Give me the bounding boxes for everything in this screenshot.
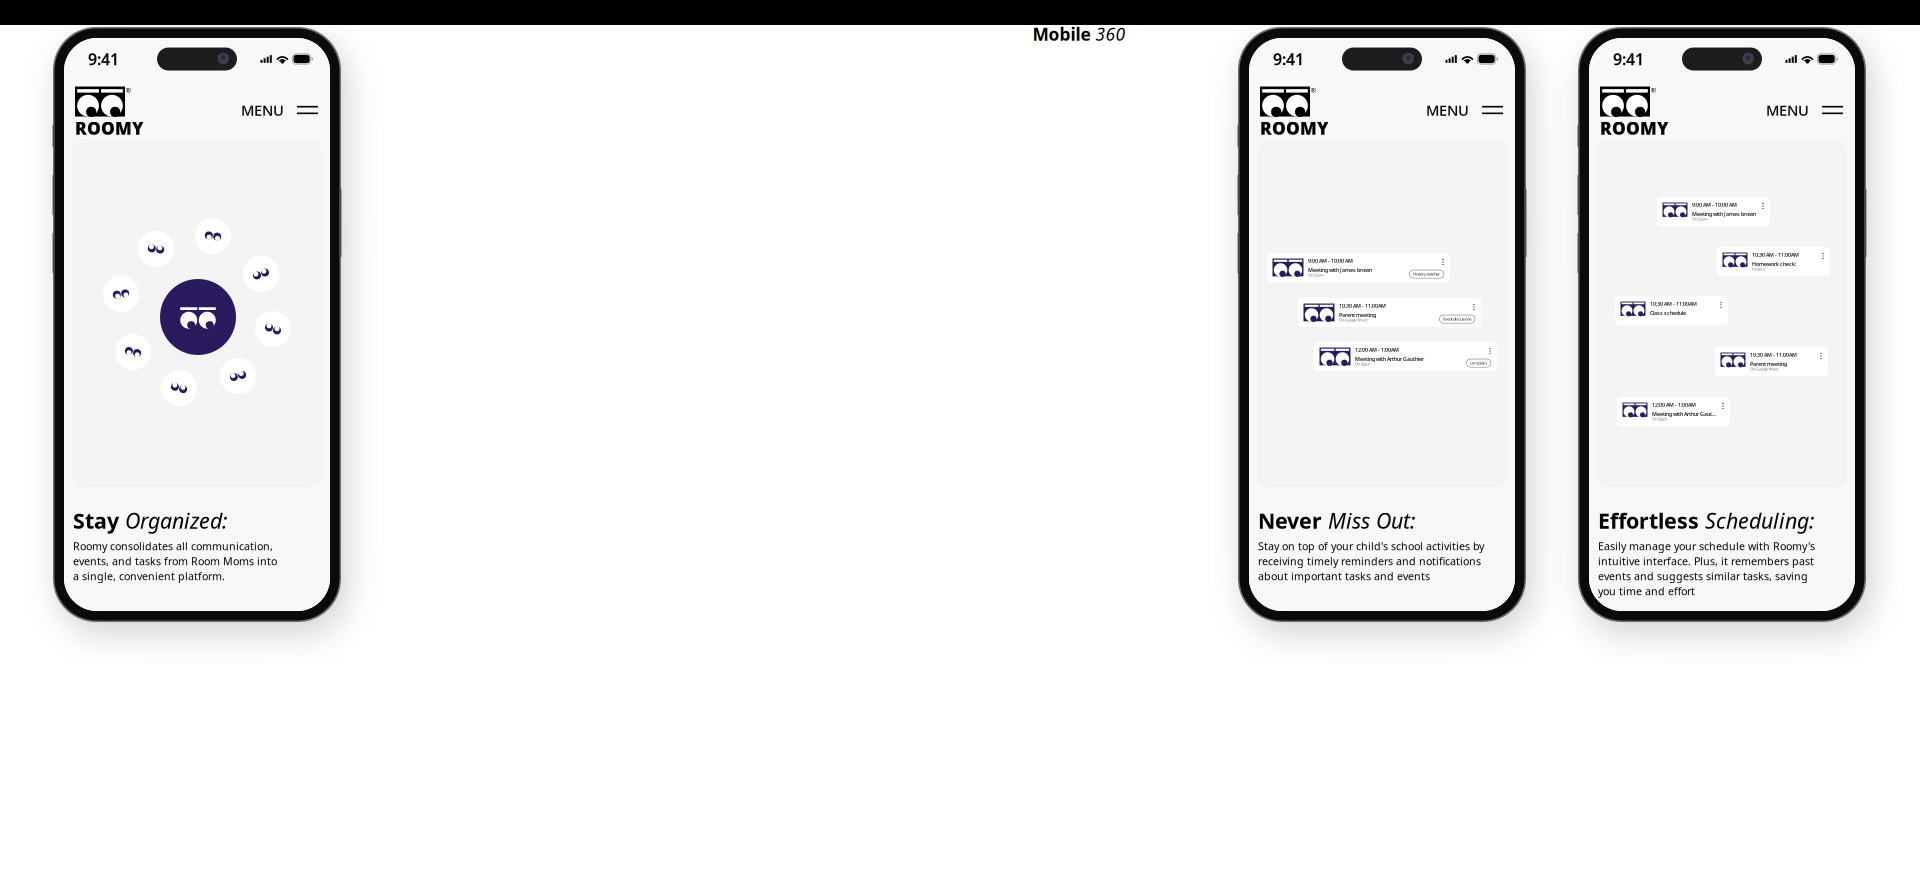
staticText: ® xyxy=(125,86,131,95)
button[interactable]: 12:00 AM - 1:00AM xyxy=(1617,397,1730,426)
staticText: Meeting with Arthur Gauthier xyxy=(1652,410,1718,417)
staticText: Easily manage your schedule with Roomy's xyxy=(1598,539,1815,553)
staticText: 12:00 AM - 1:00AM xyxy=(1355,346,1399,353)
staticText: Stay xyxy=(73,506,119,535)
staticText: you time and effort xyxy=(1598,584,1695,598)
button[interactable]: 9:00 AM - 10:00 AM xyxy=(1657,197,1770,226)
staticText: On Zoom xyxy=(1308,272,1324,277)
staticText: events, and tasks from Room Moms into xyxy=(73,554,277,568)
staticText: 9:41 xyxy=(88,48,119,70)
staticText: 9:00 AM - 10:00 AM xyxy=(1692,201,1737,208)
staticText: Parent meeting xyxy=(1750,360,1787,367)
staticText: Organized: xyxy=(125,506,227,535)
staticText: a single, convenient platform. xyxy=(73,569,225,583)
staticText: 10:30 AM - 11:00AM xyxy=(1650,300,1697,307)
staticText: On Google Meet xyxy=(1339,317,1367,322)
staticText: 9:41 xyxy=(1613,48,1644,70)
staticText: receiving timely reminders and notificat… xyxy=(1258,554,1481,568)
staticText: 9:00 AM - 10:00 AM xyxy=(1308,257,1353,264)
staticText: 10:30 AM - 11:00AM xyxy=(1750,351,1797,358)
staticText: about important tasks and events xyxy=(1258,569,1430,583)
staticText: Effortless xyxy=(1598,506,1699,535)
staticText: Directors xyxy=(1470,360,1487,366)
button[interactable]: Roomy home xyxy=(1600,86,1656,133)
staticText: ® xyxy=(1310,86,1316,95)
staticText: On Google Meet xyxy=(1750,366,1778,371)
button[interactable]: 10:30 AM - 11:00AM xyxy=(1298,298,1481,327)
staticText: MENU xyxy=(241,100,284,120)
staticText: ROOMY xyxy=(1260,116,1329,139)
staticText: Homework check: xyxy=(1752,260,1796,267)
button[interactable]: 10:30 AM - 11:00AM xyxy=(1715,347,1828,376)
button[interactable]: MENU xyxy=(1426,100,1503,120)
button[interactable]: Roomy home xyxy=(1260,86,1316,133)
staticText: On Zoom xyxy=(1692,216,1708,221)
staticText: 360 xyxy=(1095,22,1125,45)
staticText: 9:41 xyxy=(1273,48,1304,70)
staticText: On Slack xyxy=(1355,361,1370,366)
staticText: ® xyxy=(1650,86,1656,95)
staticText: MENU xyxy=(1426,100,1469,120)
staticText: Parent meeting xyxy=(1339,311,1376,318)
staticText: Scheduling: xyxy=(1705,506,1814,535)
staticText: MENU xyxy=(1766,100,1809,120)
button[interactable]: MENU xyxy=(1766,100,1843,120)
staticText: History xyxy=(1752,266,1765,271)
staticText: Roomy consolidates all communication, xyxy=(73,539,273,553)
staticText: Meeting with James brown xyxy=(1308,266,1372,273)
staticText: ROOMY xyxy=(75,116,144,139)
button[interactable]: MENU xyxy=(241,100,318,120)
staticText: History teacher xyxy=(1413,271,1440,277)
staticText: Mobile xyxy=(1032,22,1090,45)
staticText: 10:30 AM - 11:00AM xyxy=(1752,251,1799,258)
button[interactable]: 10:30 AM - 11:00AM xyxy=(1717,247,1830,276)
staticText: Event discussion xyxy=(1443,316,1471,322)
staticText: Miss Out: xyxy=(1328,506,1415,535)
staticText: 12:00 AM - 1:00AM xyxy=(1652,401,1696,408)
staticText: On Slack xyxy=(1652,416,1667,421)
staticText: Meeting with James brown xyxy=(1692,210,1756,217)
staticText: Stay on top of your child's school activ… xyxy=(1258,539,1484,553)
staticText: ROOMY xyxy=(1600,116,1669,139)
button[interactable]: 12:00 AM - 1:00AM xyxy=(1314,342,1497,371)
staticText: intuitive interface. Plus, it remembers … xyxy=(1598,554,1814,568)
staticText: Never xyxy=(1258,506,1322,535)
staticText: Class schedule xyxy=(1650,309,1686,316)
button[interactable]: 9:00 AM - 10:00 AM xyxy=(1267,253,1450,282)
button[interactable]: 10:30 AM - 11:00AM xyxy=(1615,296,1728,325)
staticText: 10:30 AM - 11:00AM xyxy=(1339,302,1386,309)
button[interactable]: Roomy home xyxy=(75,86,131,133)
staticText: Meeting with Arthur Gauthier xyxy=(1355,355,1424,362)
staticText: events and suggests similar tasks, savin… xyxy=(1598,569,1808,583)
